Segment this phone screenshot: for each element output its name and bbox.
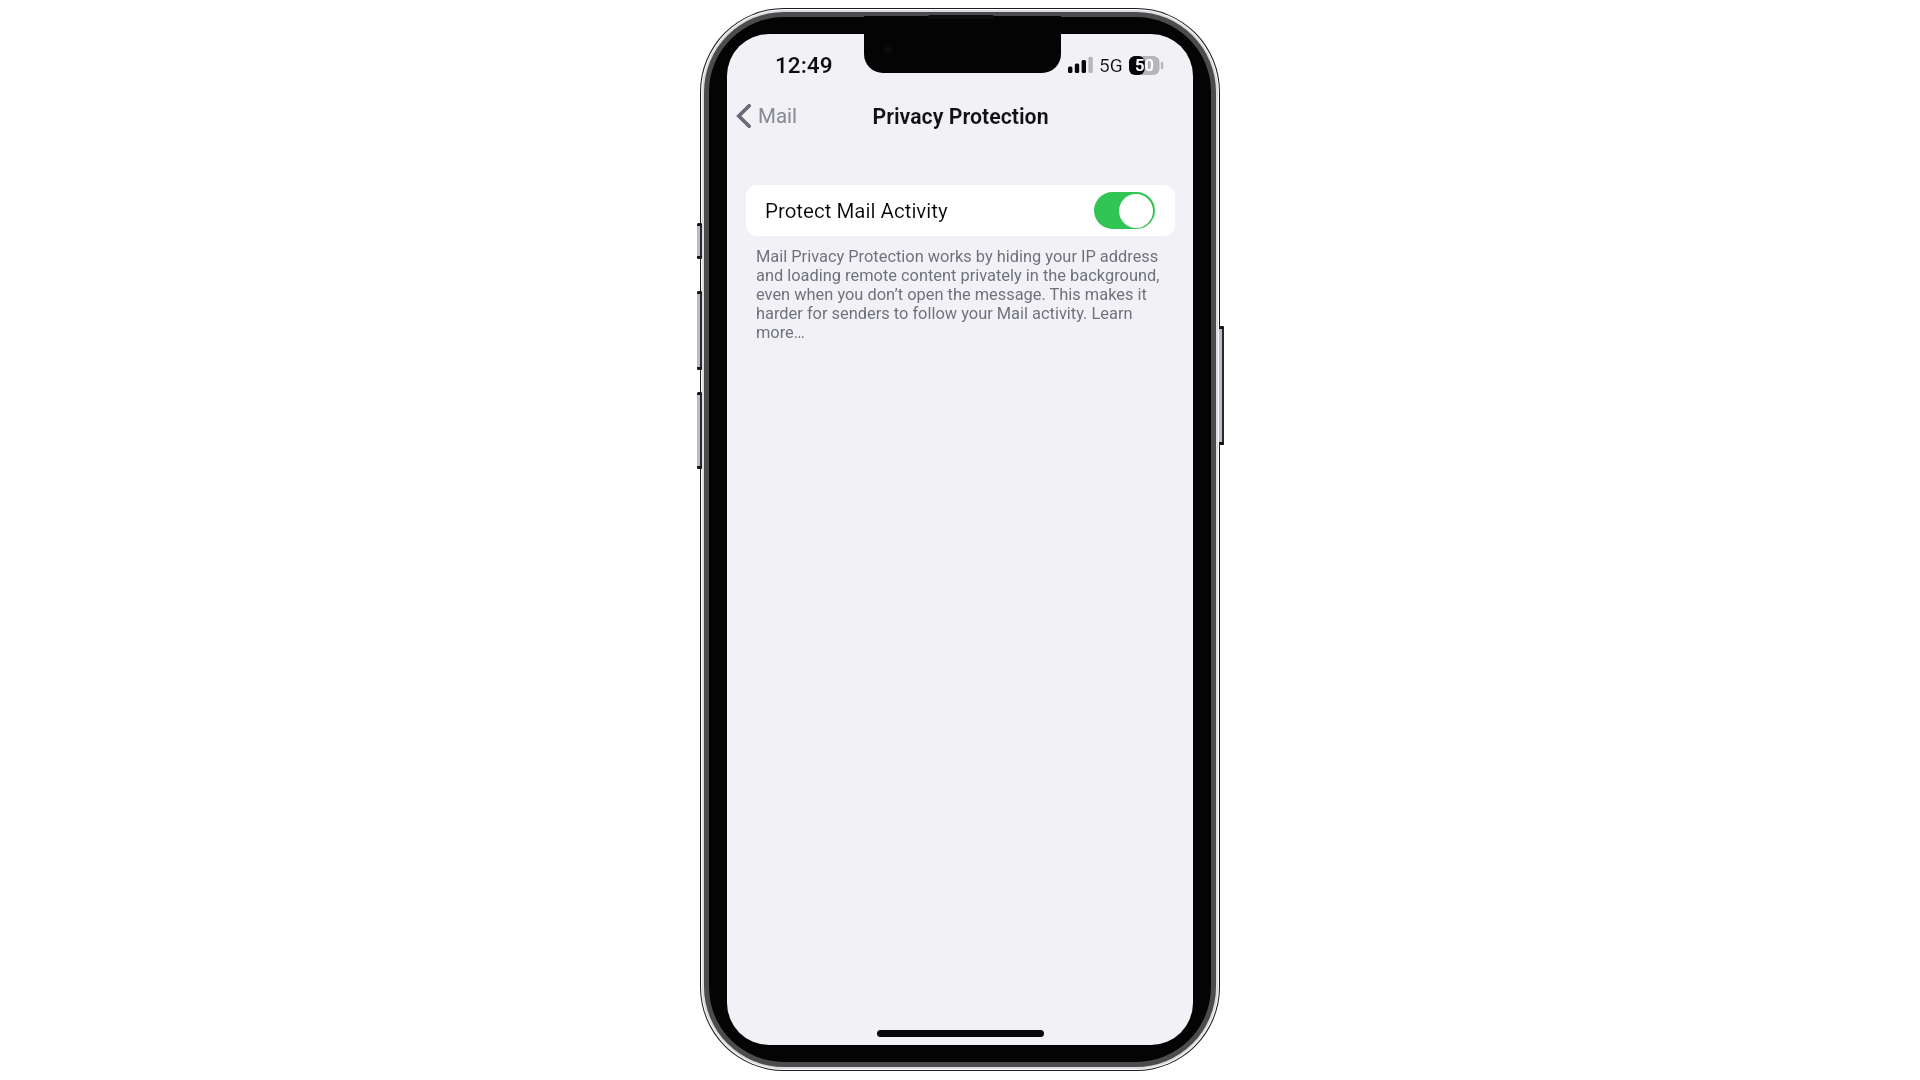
staticText: Mail [758, 104, 798, 128]
button[interactable]: Protect Mail Activity [746, 185, 1175, 236]
staticText: 50 [1135, 56, 1154, 75]
button[interactable]: Protect Mail Activity toggle [1094, 192, 1155, 229]
staticText: 5G [1099, 54, 1123, 76]
button[interactable]: Back to Mail [729, 98, 810, 134]
staticText: Protect Mail Activity [765, 199, 948, 223]
staticText: Mail Privacy Protection works by hiding … [756, 247, 1160, 342]
staticText: 12:49 [775, 52, 833, 78]
staticText: Privacy Protection [872, 104, 1049, 129]
